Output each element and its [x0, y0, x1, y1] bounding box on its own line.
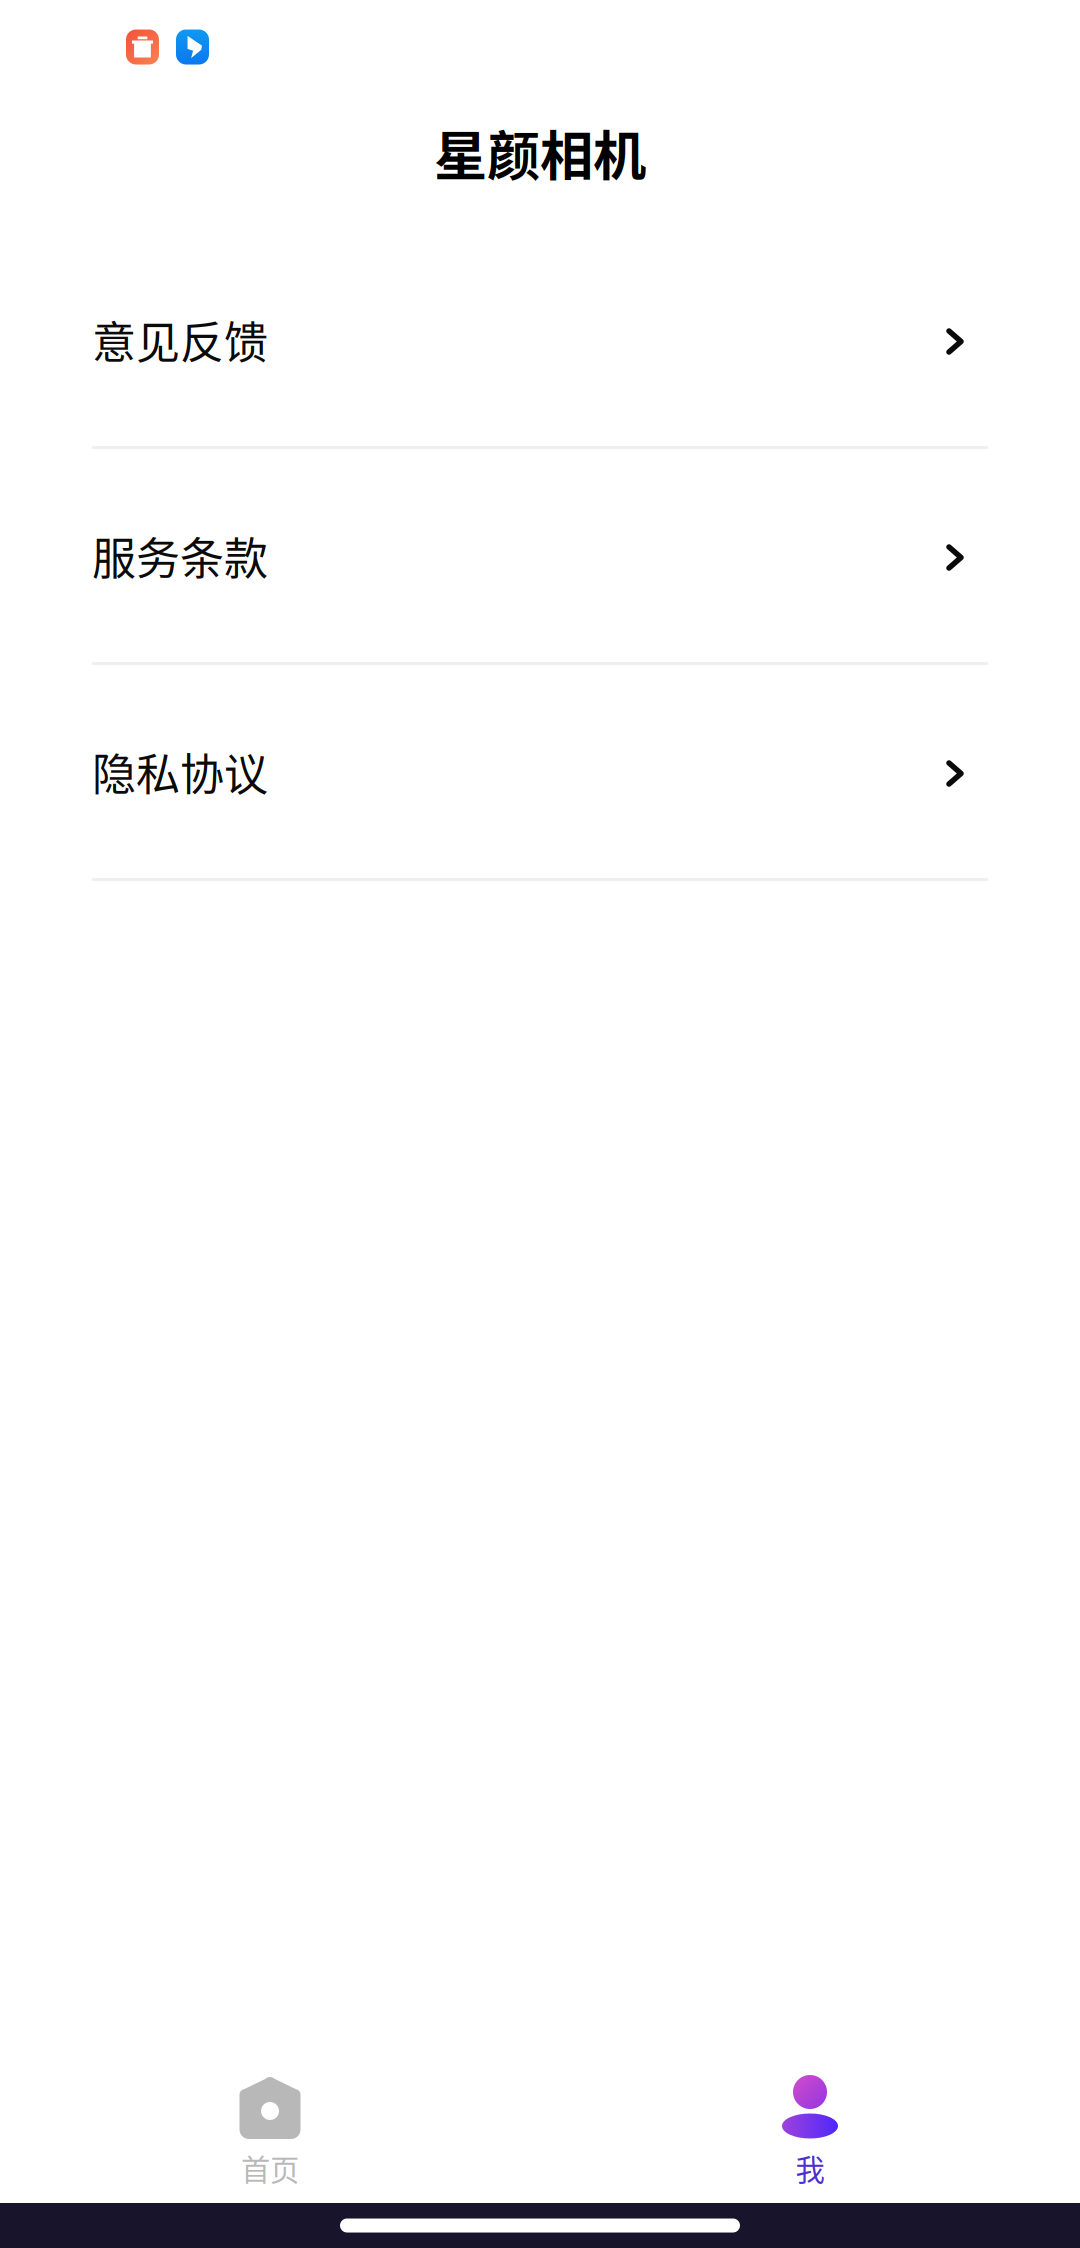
staticText: 我: [795, 2147, 824, 2189]
button[interactable]: 意见反馈: [0, 233, 1080, 449]
button[interactable]: 返回: [126, 29, 159, 64]
staticText: 星颜相机: [434, 114, 646, 191]
staticText: 服务条款: [92, 524, 268, 587]
staticText: 意见反馈: [92, 308, 268, 371]
button[interactable]: 服务条款: [0, 449, 1080, 665]
staticText: 首页: [241, 2147, 299, 2189]
button[interactable]: 首页: [0, 2075, 540, 2193]
staticText: 隐私协议: [92, 740, 268, 803]
button[interactable]: 钉钉: [176, 29, 209, 64]
button[interactable]: 我: [540, 2075, 1080, 2193]
button[interactable]: 隐私协议: [0, 665, 1080, 881]
